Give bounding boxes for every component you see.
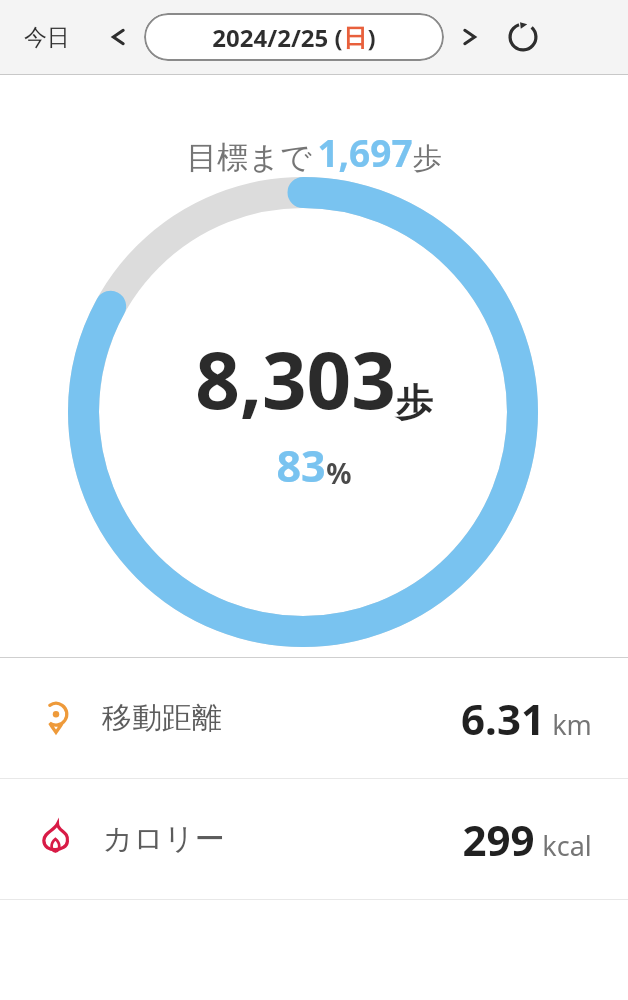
other: Calories (36, 819, 76, 859)
staticText: 日 (343, 23, 367, 53)
staticText: 8,303 (195, 326, 396, 432)
staticText: 移動距離 (102, 699, 222, 737)
button[interactable]: 2024/2/25 ( (144, 13, 444, 61)
staticText: カロリー (102, 820, 225, 858)
staticText: km (552, 706, 592, 743)
other: Distance (36, 698, 76, 738)
staticText: 83 (276, 436, 326, 495)
staticText: kcal (542, 827, 592, 864)
button[interactable]: 今日 (18, 17, 76, 58)
staticText: 2024/2/25 ( (212, 21, 343, 54)
staticText: % (326, 454, 352, 492)
staticText: 歩 (396, 379, 433, 426)
staticText: 299 (462, 811, 535, 868)
button[interactable]: Previous day (98, 17, 138, 57)
staticText: 今日 (24, 23, 70, 52)
staticText: 6.31 (461, 690, 545, 747)
staticText: 歩 (413, 140, 442, 177)
staticText: 目標まで (186, 138, 312, 177)
staticText: ) (367, 21, 376, 54)
button[interactable]: Refresh (500, 14, 546, 60)
button[interactable]: Calories (0, 779, 628, 899)
button[interactable]: Distance (0, 658, 628, 778)
button[interactable]: Next day (450, 17, 490, 57)
staticText: 1,697 (317, 127, 413, 177)
